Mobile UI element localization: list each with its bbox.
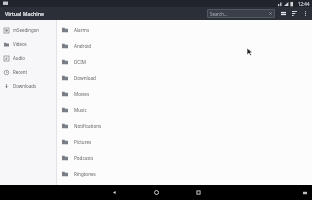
staticText: Android bbox=[74, 43, 92, 49]
staticText: Alarms bbox=[74, 27, 90, 33]
staticText: DCIM bbox=[74, 59, 86, 65]
button[interactable]: Back bbox=[107, 185, 122, 200]
staticText: Videos bbox=[13, 41, 27, 47]
staticText: Pictures bbox=[74, 139, 92, 145]
staticText: Recent bbox=[13, 69, 28, 75]
staticText: mSeedingon bbox=[13, 27, 40, 33]
button[interactable]: Download bbox=[57, 70, 312, 86]
button[interactable]: View mode bbox=[278, 8, 289, 19]
button[interactable]: Videos bbox=[0, 37, 56, 51]
button[interactable]: DCIM bbox=[57, 54, 312, 70]
button[interactable]: Recent apps bbox=[191, 185, 206, 200]
button[interactable]: Android bbox=[57, 38, 312, 54]
button[interactable]: Alarms bbox=[57, 22, 312, 38]
staticText: Downloads bbox=[13, 83, 36, 89]
button[interactable]: Downloads bbox=[0, 79, 56, 93]
staticText: Music bbox=[74, 107, 87, 113]
other: Clear search bbox=[268, 11, 273, 16]
button[interactable]: Music bbox=[57, 102, 312, 118]
button[interactable]: Podcasts bbox=[57, 150, 312, 166]
staticText: 12:44 bbox=[298, 1, 310, 7]
button[interactable]: Search... bbox=[207, 9, 275, 18]
button[interactable]: Recent bbox=[0, 65, 56, 79]
button[interactable]: Sort bbox=[289, 8, 300, 19]
staticText: Virtual Machine bbox=[5, 10, 44, 17]
staticText: Notifications bbox=[74, 123, 102, 129]
staticText: Movies bbox=[74, 91, 90, 97]
button[interactable]: Notifications bbox=[57, 118, 312, 134]
button[interactable]: Audio bbox=[0, 51, 56, 65]
button[interactable]: More options bbox=[300, 8, 311, 19]
staticText: Audio bbox=[13, 55, 26, 61]
button[interactable]: mSeedingon bbox=[0, 23, 56, 37]
staticText: Podcasts bbox=[74, 155, 94, 161]
button[interactable]: Home bbox=[149, 185, 164, 200]
staticText: Search... bbox=[210, 11, 228, 17]
button[interactable]: Movies bbox=[57, 86, 312, 102]
button[interactable]: Keyboard bbox=[301, 189, 309, 197]
button[interactable]: Ringtones bbox=[57, 166, 312, 182]
button[interactable]: Pictures bbox=[57, 134, 312, 150]
staticText: Ringtones bbox=[74, 171, 96, 177]
staticText: Download bbox=[74, 75, 96, 81]
